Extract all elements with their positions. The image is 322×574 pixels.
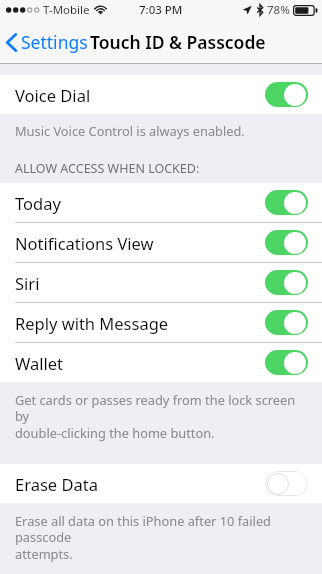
button[interactable]: Siri — [0, 263, 322, 302]
staticText: Today — [15, 192, 61, 214]
button[interactable]: Erase Data — [0, 464, 322, 503]
staticText: 78% — [267, 2, 290, 18]
button[interactable]: On — [265, 230, 308, 255]
button[interactable]: Today — [0, 183, 322, 222]
button[interactable]: On — [265, 190, 308, 215]
staticText: ALLOW ACCESS WHEN LOCKED: — [15, 160, 200, 177]
button[interactable]: Off — [265, 471, 308, 496]
staticText: Erase all data on this iPhone after 10 f… — [15, 512, 310, 563]
button[interactable]: On — [265, 82, 308, 107]
button[interactable]: Settings — [0, 22, 98, 62]
button[interactable]: On — [265, 270, 308, 295]
staticText: Settings — [21, 30, 88, 54]
staticText: Siri — [15, 272, 40, 294]
button[interactable]: Voice Dial — [0, 75, 322, 114]
staticText: Reply with Message — [15, 312, 169, 334]
staticText: Music Voice Control is always enabled. — [15, 122, 245, 139]
button[interactable]: On — [265, 350, 308, 375]
staticText: Voice Dial — [15, 84, 91, 106]
button[interactable]: Notifications View — [0, 223, 322, 262]
staticText: T-Mobile — [43, 2, 90, 18]
button[interactable]: Wallet — [0, 343, 322, 382]
button[interactable]: Reply with Message — [0, 303, 322, 342]
staticText: Get cards or passes ready from the lock … — [15, 391, 310, 442]
staticText: Notifications View — [15, 232, 154, 254]
staticText: Erase Data — [15, 473, 98, 495]
button[interactable]: On — [265, 310, 308, 335]
staticText: Wallet — [15, 352, 64, 374]
staticText: Touch ID & Passcode — [90, 30, 266, 54]
staticText: 7:03 PM — [139, 2, 183, 18]
